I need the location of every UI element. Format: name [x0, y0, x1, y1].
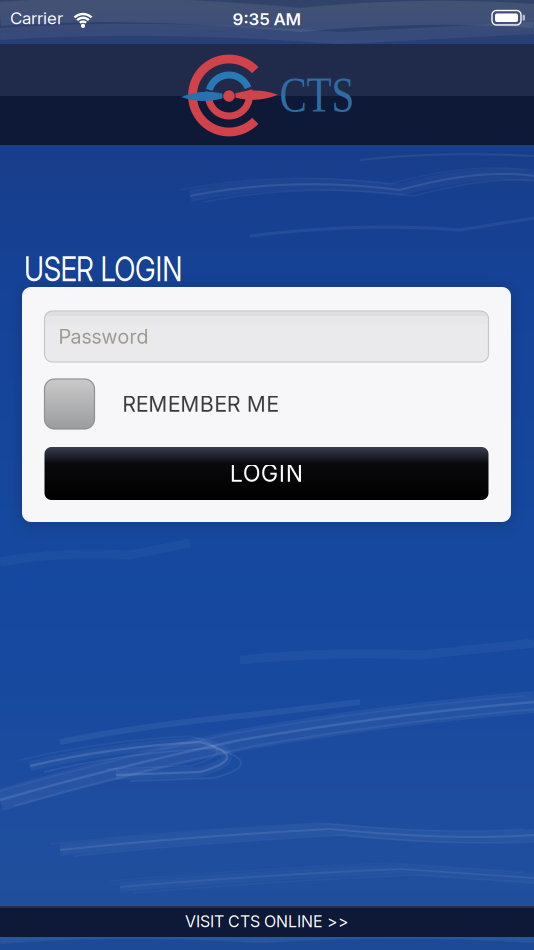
staticText: VISIT CTS ONLINE >> [185, 912, 349, 931]
staticText: USER LOGIN [24, 250, 182, 283]
button[interactable]: VISIT CTS ONLINE >> [0, 906, 534, 937]
staticText: Carrier [10, 8, 63, 28]
secureTextField[interactable]: Password [58, 325, 488, 348]
button[interactable]: LOGIN [44, 447, 488, 500]
button[interactable]: Remember me [44, 379, 94, 429]
staticText: REMEMBER ME [122, 392, 278, 416]
staticText: Password [58, 325, 148, 348]
staticText: LOGIN [230, 460, 303, 487]
staticText: CTS [279, 72, 354, 117]
staticText: 9:35 AM [232, 9, 301, 29]
